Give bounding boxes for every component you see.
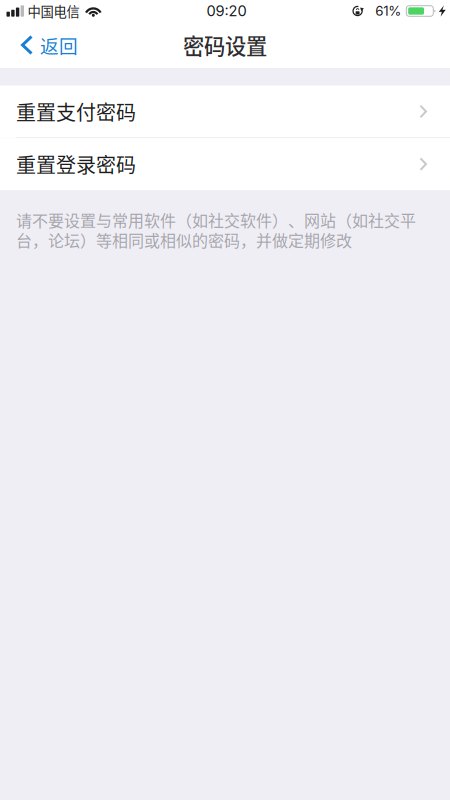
staticText: 请不要设置与常用软件（如社交软件）、网站（如社交平 (16, 208, 416, 231)
staticText: 重置登录密码 (16, 150, 136, 179)
staticText: 61% (375, 3, 401, 19)
button[interactable]: 重置登录密码 (0, 138, 450, 190)
staticText: 台，论坛）等相同或相似的密码，并做定期修改 (16, 228, 352, 251)
staticText: 返回 (40, 31, 78, 58)
button[interactable]: 重置支付密码 (0, 85, 450, 137)
button[interactable]: 返回 (0, 22, 90, 68)
staticText: 中国电信 (27, 1, 79, 21)
staticText: 密码设置 (183, 30, 267, 60)
staticText: 重置支付密码 (16, 97, 136, 126)
staticText: 09:20 (206, 2, 246, 20)
